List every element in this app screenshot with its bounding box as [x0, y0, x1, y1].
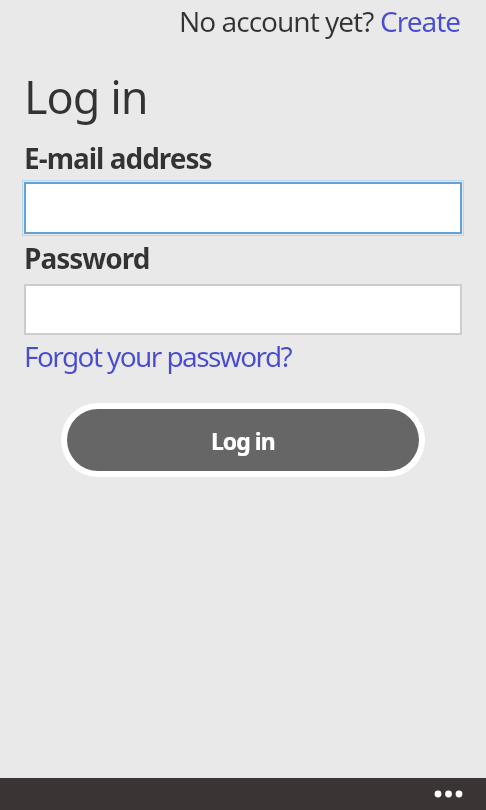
staticText: Password: [24, 239, 150, 277]
button[interactable]: [24, 284, 462, 335]
button[interactable]: Create: [380, 2, 461, 40]
staticText: No account yet?: [179, 2, 380, 40]
button[interactable]: Forgot your password?: [24, 337, 292, 375]
button[interactable]: [24, 182, 462, 234]
button[interactable]: Log in: [67, 409, 419, 471]
staticText: E-mail address: [24, 139, 212, 177]
staticText: Log in: [24, 66, 148, 127]
staticText: Log in: [211, 425, 275, 456]
button[interactable]: [442, 778, 486, 810]
